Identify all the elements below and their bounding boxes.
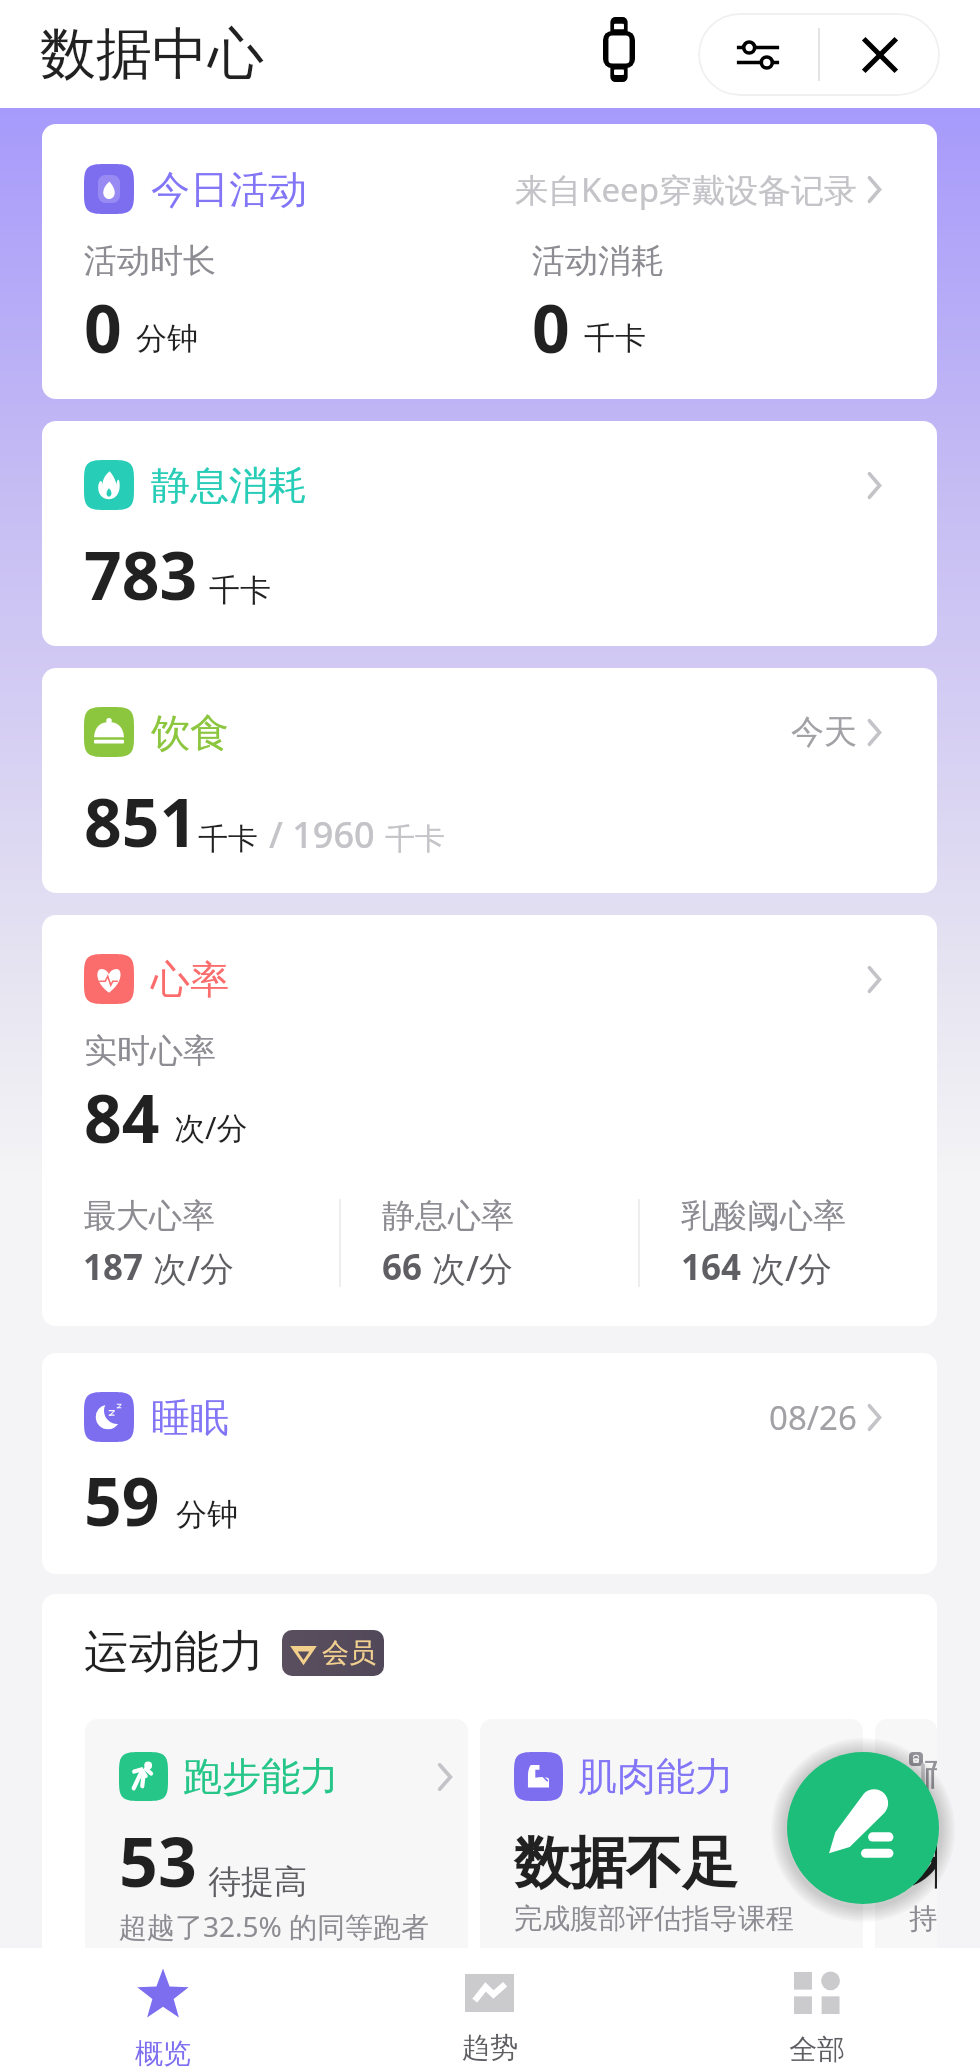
staticText: 164 bbox=[681, 1243, 742, 1291]
button[interactable]: Filter settings bbox=[698, 13, 818, 96]
staticText: 全部 bbox=[789, 2032, 845, 2067]
staticText: 次/分 bbox=[153, 1245, 235, 1291]
staticText: 千卡 bbox=[209, 571, 271, 610]
staticText: 分钟 bbox=[136, 319, 198, 358]
staticText: 静息心率 bbox=[382, 1195, 514, 1237]
staticText: 来自Keep穿戴设备记录 bbox=[515, 167, 857, 212]
staticText: 分钟 bbox=[176, 1495, 238, 1534]
staticText: 趋势 bbox=[462, 2030, 518, 2065]
staticText: 今天 bbox=[791, 711, 857, 753]
staticText: 0 bbox=[532, 282, 570, 372]
staticText: 睡眠 bbox=[151, 1393, 229, 1442]
staticText: 活动时长 bbox=[84, 240, 216, 282]
staticText: 实时心率 bbox=[84, 1030, 216, 1072]
staticText: 活动消耗 bbox=[532, 240, 664, 282]
button[interactable]: 睡眠 bbox=[42, 1353, 937, 1574]
button[interactable]: 概览 bbox=[0, 1948, 326, 2070]
staticText: 运动能力 bbox=[84, 1624, 264, 1681]
staticText: 概览 bbox=[135, 2036, 191, 2070]
button[interactable]: 静息消耗 bbox=[42, 421, 937, 646]
staticText: 08/26 bbox=[769, 1395, 857, 1440]
staticText: 66 bbox=[382, 1243, 423, 1291]
button[interactable]: 今日活动 bbox=[42, 124, 937, 399]
staticText: 未解锁 bbox=[909, 1828, 923, 1899]
staticText: 851 bbox=[84, 776, 198, 866]
staticText: 饮食 bbox=[151, 708, 229, 757]
staticText: 0 bbox=[84, 282, 122, 372]
staticText: 肌肉能力 bbox=[578, 1752, 734, 1801]
staticText: 783 bbox=[84, 529, 198, 619]
staticText: / 1960 bbox=[269, 810, 375, 859]
staticText: 最大心率 bbox=[83, 1195, 215, 1237]
staticText: 会员 bbox=[322, 1636, 376, 1670]
button[interactable]: 耐力 bbox=[875, 1719, 937, 1948]
staticText: 完成腹部评估指导课程 bbox=[514, 1901, 794, 1936]
staticText: 59 bbox=[84, 1455, 160, 1545]
button[interactable]: 肌肉能力 bbox=[480, 1719, 863, 1948]
button[interactable]: 心率 bbox=[42, 915, 937, 1326]
staticText: 乳酸阈心率 bbox=[681, 1195, 846, 1237]
button[interactable]: Close bbox=[820, 13, 940, 96]
staticText: 待提高 bbox=[208, 1861, 307, 1903]
staticText: 心率 bbox=[151, 955, 229, 1004]
staticText: 千卡 bbox=[584, 319, 646, 358]
staticText: 今日活动 bbox=[151, 165, 307, 214]
button[interactable]: 饮食 bbox=[42, 668, 937, 893]
staticText: 静息消耗 bbox=[151, 461, 307, 510]
button[interactable]: 全部 bbox=[653, 1948, 980, 2070]
staticText: 千卡 bbox=[385, 820, 445, 858]
button[interactable]: Add record bbox=[787, 1752, 939, 1904]
staticText: 数据中心 bbox=[40, 19, 264, 90]
button[interactable]: Wearable device bbox=[587, 10, 651, 98]
staticText: 53 bbox=[119, 1814, 197, 1907]
button[interactable]: 会员 bbox=[289, 1636, 376, 1670]
staticText: 跑步能力 bbox=[183, 1752, 339, 1801]
button[interactable]: 趋势 bbox=[326, 1948, 653, 2070]
button[interactable]: 跑步能力 bbox=[85, 1719, 468, 1948]
staticText: 千卡 bbox=[198, 820, 258, 858]
staticText: 84 bbox=[84, 1072, 160, 1162]
staticText: 次/分 bbox=[174, 1106, 248, 1148]
staticText: 持续运动解锁能力 bbox=[909, 1901, 923, 1936]
staticText: 次/分 bbox=[432, 1245, 514, 1291]
staticText: 187 bbox=[83, 1243, 144, 1291]
staticText: 数据不足 bbox=[514, 1828, 738, 1899]
staticText: 超越了32.5% 的同等跑者 bbox=[119, 1907, 430, 1945]
staticText: 次/分 bbox=[751, 1245, 833, 1291]
